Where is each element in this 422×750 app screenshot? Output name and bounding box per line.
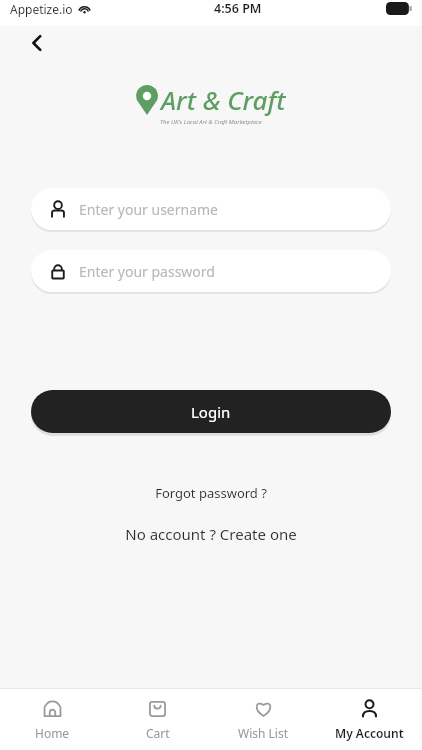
- button[interactable]: Back: [20, 26, 54, 60]
- staticText: My Account: [335, 725, 404, 741]
- staticText: Enter your password: [79, 262, 215, 281]
- button[interactable]: My Account: [316, 692, 422, 747]
- staticText: Art & Craft: [161, 82, 286, 117]
- button[interactable]: No account ? Create one: [0, 520, 422, 548]
- button[interactable]: Cart: [105, 692, 210, 747]
- button[interactable]: Enter your username: [31, 188, 391, 230]
- staticText: 4:56 PM: [214, 0, 262, 17]
- staticText: Home: [35, 725, 70, 741]
- button[interactable]: Enter your password: [31, 250, 391, 292]
- button[interactable]: Wish List: [210, 692, 316, 747]
- button[interactable]: Forgot password ?: [0, 480, 422, 506]
- button[interactable]: Login: [31, 390, 391, 433]
- staticText: Cart: [146, 725, 170, 741]
- staticText: Enter your username: [79, 200, 219, 219]
- staticText: Appetize.io: [10, 1, 73, 17]
- button[interactable]: Home: [0, 692, 105, 747]
- staticText: Wish List: [238, 725, 289, 741]
- staticText: The UK's Local Art & Craft Marketplace: [160, 118, 262, 126]
- staticText: Login: [191, 402, 231, 422]
